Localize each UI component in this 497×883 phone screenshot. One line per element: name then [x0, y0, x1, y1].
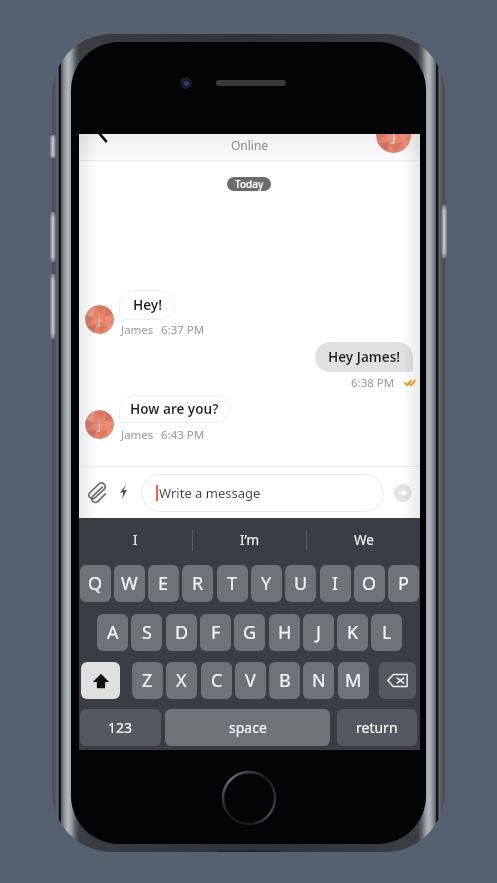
button[interactable]: C: [201, 662, 232, 699]
staticText: I: [133, 531, 138, 549]
staticText: M: [345, 668, 362, 693]
staticText: F: [211, 620, 221, 645]
button[interactable]: Shift: [81, 662, 120, 699]
button[interactable]: D: [166, 614, 197, 651]
staticText: H: [278, 620, 292, 645]
button[interactable]: Hey!: [119, 290, 175, 320]
staticText: W: [121, 571, 138, 596]
staticText: space: [229, 718, 267, 737]
button[interactable]: P: [388, 565, 419, 602]
staticText: P: [398, 571, 409, 596]
staticText: How are you?: [130, 400, 219, 418]
staticText: Y: [261, 571, 272, 596]
staticText: V: [245, 668, 256, 693]
button[interactable]: Back: [92, 134, 114, 150]
staticText: 6:37 PM: [161, 322, 205, 338]
button[interactable]: U: [285, 565, 316, 602]
button[interactable]: How are you?: [119, 395, 230, 423]
staticText: 6:38 PM: [351, 375, 395, 391]
staticText: James: [121, 322, 154, 338]
button[interactable]: H: [269, 614, 300, 651]
staticText: J: [316, 620, 321, 645]
staticText: I’m: [240, 531, 260, 549]
staticText: Z: [142, 668, 153, 693]
staticText: James: [121, 427, 154, 443]
button[interactable]: W: [114, 565, 145, 602]
button[interactable]: Q: [80, 565, 111, 602]
button[interactable]: R: [182, 565, 213, 602]
button[interactable]: V: [235, 662, 266, 699]
button[interactable]: T: [217, 565, 248, 602]
button[interactable]: Write a message: [141, 474, 384, 512]
staticText: Hey!: [133, 296, 162, 314]
staticText: Hey James!: [328, 348, 401, 366]
staticText: D: [175, 620, 189, 645]
staticText: R: [192, 571, 204, 596]
staticText: Online: [79, 137, 420, 153]
staticText: K: [347, 620, 359, 645]
staticText: J: [392, 134, 396, 146]
staticText: S: [142, 620, 152, 645]
staticText: 123: [108, 718, 133, 737]
button[interactable]: Y: [251, 565, 282, 602]
button[interactable]: Quick action: [112, 480, 135, 503]
button[interactable]: Attach file: [84, 480, 109, 505]
button[interactable]: Backspace: [379, 662, 416, 699]
staticText: U: [294, 571, 308, 596]
button[interactable]: A: [97, 614, 128, 651]
button[interactable]: 123: [80, 709, 161, 746]
button[interactable]: Today: [227, 177, 271, 191]
staticText: 6:43 PM: [161, 427, 205, 443]
button[interactable]: X: [166, 662, 197, 699]
staticText: Today: [235, 177, 264, 191]
button[interactable]: Send: [394, 484, 412, 502]
button[interactable]: We: [307, 518, 420, 562]
staticText: L: [382, 620, 392, 645]
button[interactable]: F: [200, 614, 231, 651]
button[interactable]: E: [148, 565, 179, 602]
staticText: J: [98, 416, 102, 433]
button[interactable]: [79, 134, 420, 160]
button[interactable]: K: [337, 614, 368, 651]
staticText: C: [211, 668, 223, 693]
button[interactable]: O: [354, 565, 385, 602]
button[interactable]: Z: [132, 662, 163, 699]
staticText: E: [158, 571, 169, 596]
button[interactable]: I’m: [193, 518, 306, 562]
staticText: X: [176, 668, 187, 693]
staticText: We: [354, 531, 374, 549]
staticText: O: [362, 571, 377, 596]
button[interactable]: return: [337, 709, 417, 746]
button[interactable]: S: [131, 614, 162, 651]
staticText: return: [356, 718, 398, 737]
staticText: T: [227, 571, 238, 596]
button[interactable]: B: [269, 662, 300, 699]
staticText: N: [312, 668, 326, 693]
button[interactable]: I: [320, 565, 351, 602]
staticText: Q: [88, 571, 103, 596]
button[interactable]: space: [165, 709, 330, 746]
staticText: G: [243, 620, 257, 645]
button[interactable]: I: [79, 518, 192, 562]
button[interactable]: Hey James!: [315, 342, 413, 372]
staticText: A: [107, 620, 119, 645]
button[interactable]: M: [338, 662, 369, 699]
button[interactable]: J: [303, 614, 334, 651]
button[interactable]: G: [234, 614, 265, 651]
staticText: J: [98, 311, 102, 328]
button[interactable]: L: [371, 614, 402, 651]
staticText: Write a message: [159, 484, 261, 502]
button[interactable]: N: [303, 662, 334, 699]
staticText: B: [279, 668, 291, 693]
staticText: I: [332, 571, 339, 596]
